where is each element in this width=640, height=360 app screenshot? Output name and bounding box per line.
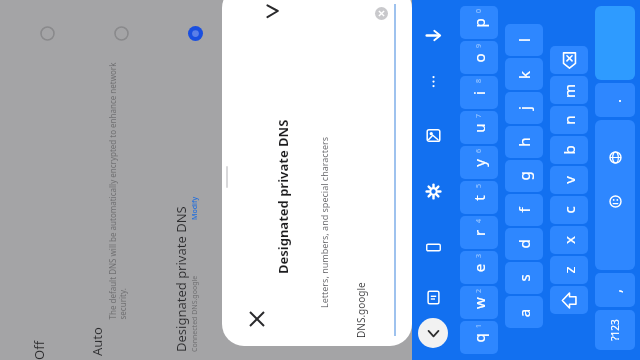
staticText: 1: [473, 323, 483, 328]
staticText: n: [559, 115, 579, 125]
staticText: k: [513, 70, 533, 79]
staticText: ,: [604, 288, 624, 293]
staticText: 3: [473, 253, 483, 258]
staticText: Designated private DNS: [274, 74, 292, 274]
staticText: Connected DNS.google: [190, 232, 200, 352]
button[interactable]: shift: [550, 286, 588, 314]
staticText: i: [469, 91, 489, 95]
staticText: Designated private DNS: [172, 152, 190, 352]
button[interactable]: clip: [420, 284, 446, 310]
staticText: Modify: [190, 160, 200, 220]
staticText: 4: [473, 218, 483, 223]
staticText: c: [559, 206, 579, 214]
staticText: 0: [473, 8, 483, 13]
button[interactable]: p: [460, 6, 498, 39]
button[interactable]: t: [460, 181, 498, 214]
button[interactable]: b: [550, 136, 588, 164]
staticText: u: [469, 123, 489, 133]
button[interactable]: dots: [420, 68, 446, 94]
staticText: 2: [473, 288, 483, 293]
staticText: l: [514, 38, 534, 42]
button[interactable]: n: [550, 106, 588, 134]
button[interactable]: Confirm: [256, 0, 290, 28]
staticText: b: [559, 145, 579, 155]
staticText: z: [559, 266, 579, 274]
button[interactable]: s: [505, 262, 543, 294]
staticText: 6: [473, 148, 483, 153]
button[interactable]: v: [550, 166, 588, 194]
staticText: o: [469, 53, 489, 63]
button[interactable]: bksp: [550, 46, 588, 74]
button[interactable]: y: [460, 146, 498, 179]
button[interactable]: Close: [242, 304, 272, 334]
staticText: 8: [473, 78, 483, 83]
button[interactable]: q: [460, 321, 498, 354]
button[interactable]: e: [460, 251, 498, 284]
staticText: s: [514, 274, 534, 282]
staticText: Auto: [88, 296, 106, 356]
staticText: j: [514, 106, 534, 110]
button[interactable]: Space: [595, 120, 635, 270]
staticText: x: [559, 236, 579, 244]
button[interactable]: m: [550, 76, 588, 104]
button[interactable]: sticker: [420, 122, 446, 148]
button[interactable]: z: [550, 256, 588, 284]
staticText: 9: [473, 43, 483, 48]
staticText: DNS.google: [354, 228, 368, 338]
staticText: a: [513, 308, 533, 317]
button[interactable]: i: [460, 76, 498, 109]
button[interactable]: h: [505, 126, 543, 158]
button[interactable]: Enter: [595, 6, 635, 80]
button[interactable]: gif: [420, 234, 446, 260]
staticText: q: [469, 333, 489, 343]
staticText: h: [514, 137, 534, 147]
button[interactable]: w: [460, 286, 498, 319]
button[interactable]: c: [550, 196, 588, 224]
button[interactable]: f: [505, 194, 543, 226]
staticText: t: [469, 195, 489, 201]
button[interactable]: k: [505, 58, 543, 90]
button[interactable]: a: [505, 296, 543, 328]
staticText: v: [559, 176, 579, 184]
staticText: y: [469, 159, 489, 167]
button[interactable]: o: [460, 41, 498, 74]
button[interactable]: x: [550, 226, 588, 254]
staticText: ?123: [608, 319, 622, 341]
staticText: e: [468, 263, 488, 272]
staticText: w: [469, 297, 489, 309]
button[interactable]: Off: [36, 22, 58, 44]
staticText: Letters, numbers, and special characters: [318, 38, 330, 308]
staticText: .: [604, 98, 624, 103]
button[interactable]: r: [460, 216, 498, 249]
staticText: f: [514, 207, 534, 213]
button[interactable]: Clear text: [370, 2, 392, 24]
button[interactable]: arrow: [420, 22, 446, 48]
staticText: The default DNS will be automatically en…: [106, 59, 127, 319]
button[interactable]: ,: [595, 273, 635, 307]
button[interactable]: Designated private DNS: [184, 22, 206, 44]
staticText: m: [558, 83, 578, 98]
button[interactable]: Auto: [110, 22, 132, 44]
button[interactable]: Hide keyboard: [418, 318, 448, 348]
button[interactable]: d: [505, 228, 543, 260]
button[interactable]: .: [595, 83, 635, 117]
staticText: Off: [30, 300, 48, 360]
staticText: 7: [473, 113, 483, 118]
button[interactable]: settings: [420, 178, 446, 204]
staticText: 5: [473, 183, 483, 188]
staticText: r: [468, 229, 488, 236]
button[interactable]: l: [505, 24, 543, 56]
button[interactable]: u: [460, 111, 498, 144]
button[interactable]: g: [505, 160, 543, 192]
button[interactable]: ?123: [595, 310, 635, 350]
staticText: d: [514, 239, 534, 249]
button[interactable]: j: [505, 92, 543, 124]
staticText: g: [514, 171, 534, 181]
staticText: p: [469, 18, 489, 28]
